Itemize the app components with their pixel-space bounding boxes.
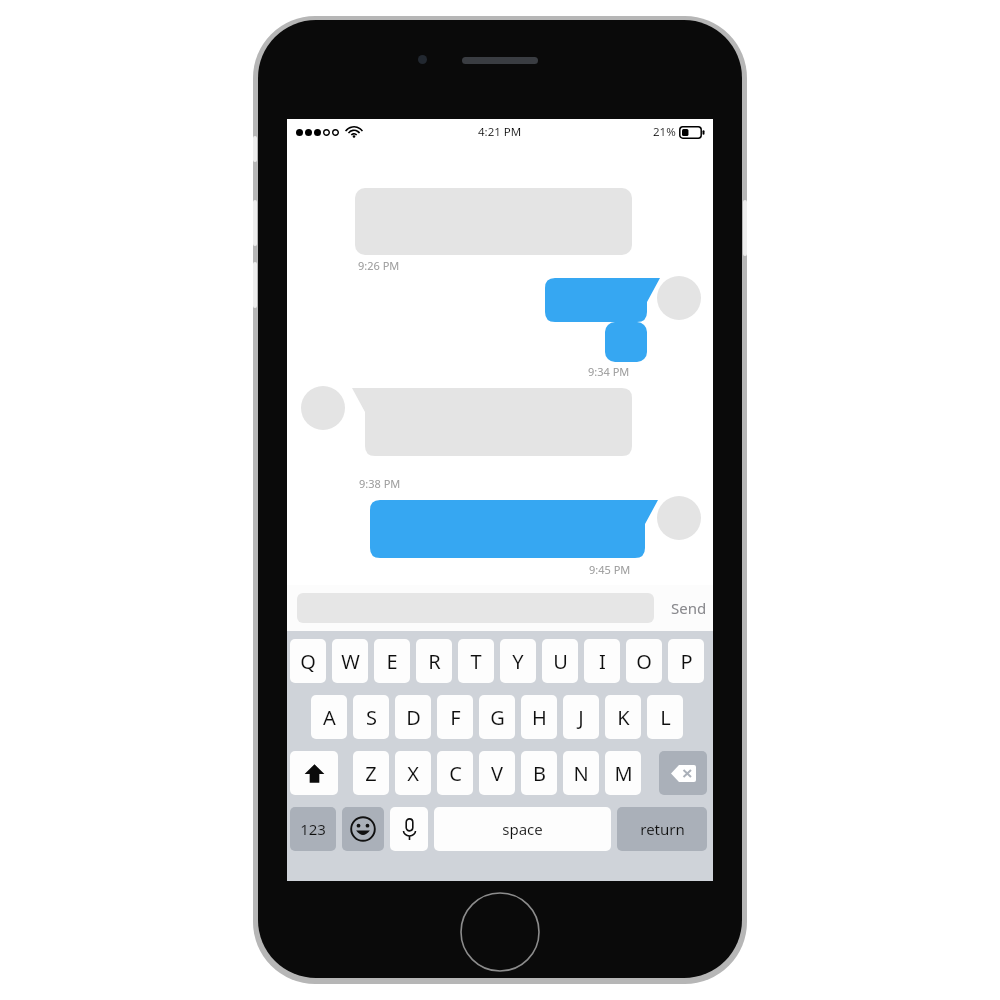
staticText: N (573, 760, 589, 787)
button[interactable]: B (521, 751, 557, 795)
button[interactable]: return (617, 807, 707, 851)
staticText: 123 (300, 819, 326, 839)
button[interactable]: L (647, 695, 683, 739)
button[interactable]: I (584, 639, 620, 683)
button[interactable]: C (437, 751, 473, 795)
staticText: 4:21 PM (478, 124, 522, 140)
staticText: Send (671, 598, 707, 618)
staticText: G (490, 704, 505, 731)
staticText: 9:45 PM (589, 562, 631, 577)
staticText: Z (365, 760, 377, 787)
staticText: J (578, 704, 584, 731)
button[interactable] (545, 278, 660, 322)
button[interactable]: J (563, 695, 599, 739)
staticText: F (450, 704, 461, 731)
staticText: P (680, 648, 693, 675)
button[interactable]: Dictate (390, 807, 428, 851)
button[interactable]: V (479, 751, 515, 795)
button[interactable]: Backspace (659, 751, 707, 795)
button[interactable] (605, 322, 647, 362)
button[interactable]: Shift (290, 751, 338, 795)
button[interactable]: P (668, 639, 704, 683)
staticText: H (532, 704, 547, 731)
button[interactable]: A (311, 695, 347, 739)
staticText: C (449, 760, 462, 787)
button[interactable]: F (437, 695, 473, 739)
button[interactable]: S (353, 695, 389, 739)
staticText: T (470, 648, 482, 675)
button[interactable]: D (395, 695, 431, 739)
button[interactable] (370, 500, 658, 558)
staticText: X (407, 760, 419, 787)
staticText: I (599, 648, 606, 675)
staticText: 9:38 PM (359, 476, 401, 491)
button[interactable]: M (605, 751, 641, 795)
staticText: E (386, 648, 398, 675)
staticText: 9:26 PM (358, 258, 400, 273)
staticText: O (636, 648, 652, 675)
staticText: R (428, 648, 441, 675)
staticText: 21% (653, 124, 676, 140)
staticText: space (502, 819, 543, 839)
button[interactable]: R (416, 639, 452, 683)
button[interactable]: X (395, 751, 431, 795)
other: Contact avatar (657, 276, 701, 320)
staticText: A (323, 704, 336, 731)
button[interactable]: Y (500, 639, 536, 683)
staticText: L (660, 704, 671, 731)
button[interactable]: Z (353, 751, 389, 795)
button[interactable]: space (434, 807, 611, 851)
button[interactable]: E (374, 639, 410, 683)
staticText: 9:34 PM (588, 364, 630, 379)
button[interactable]: N (563, 751, 599, 795)
staticText: K (617, 704, 630, 731)
button[interactable]: T (458, 639, 494, 683)
staticText: Y (512, 648, 524, 675)
staticText: M (614, 760, 633, 787)
button[interactable]: U (542, 639, 578, 683)
button[interactable]: W (332, 639, 368, 683)
staticText: D (406, 704, 421, 731)
other: Contact avatar (301, 386, 345, 430)
button[interactable] (352, 388, 632, 456)
staticText: B (533, 760, 546, 787)
button[interactable]: Send (671, 598, 707, 618)
staticText: S (366, 704, 377, 731)
button[interactable]: O (626, 639, 662, 683)
button[interactable]: H (521, 695, 557, 739)
button[interactable]: Emoji (342, 807, 384, 851)
staticText: U (553, 648, 568, 675)
staticText: V (491, 760, 503, 787)
button[interactable]: G (479, 695, 515, 739)
staticText: return (640, 819, 685, 839)
other: Contact avatar (657, 496, 701, 540)
staticText: Q (300, 648, 316, 675)
button[interactable]: 123 (290, 807, 336, 851)
button[interactable]: Q (290, 639, 326, 683)
staticText: W (341, 648, 360, 675)
button[interactable]: K (605, 695, 641, 739)
